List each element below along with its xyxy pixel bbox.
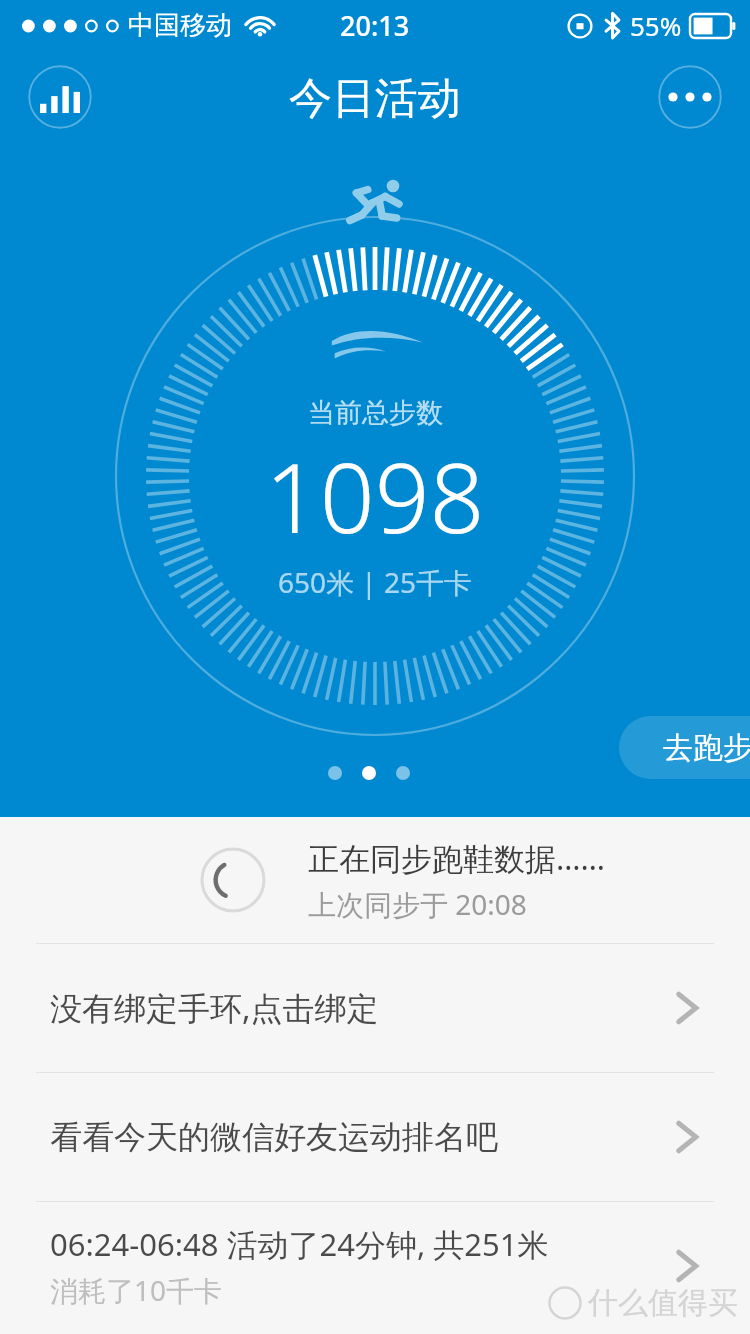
staticText: 20:13 <box>340 7 410 44</box>
staticText: 去跑步 <box>663 729 750 767</box>
staticText: 1098 <box>265 430 485 561</box>
staticText: 中国移动 <box>128 9 232 42</box>
staticText: 没有绑定手环,点击绑定 <box>50 986 379 1030</box>
staticText: 上次同步于 20:08 <box>308 885 527 923</box>
other: Open <box>674 985 700 1031</box>
other: Running activity <box>345 178 405 228</box>
button[interactable]: Statistics <box>28 65 92 129</box>
other: Open <box>674 1243 700 1289</box>
other: Open <box>674 1114 700 1160</box>
staticText: 06:24-06:48 活动了24分钟, 共251米 <box>50 1223 549 1265</box>
staticText: 当前总步数 <box>308 396 443 430</box>
button[interactable]: 看看今天的微信好友运动排名吧 <box>0 1073 750 1201</box>
button[interactable]: More options <box>658 65 722 129</box>
staticText: 什么值得买 <box>588 1284 738 1322</box>
button[interactable]: 去跑步 <box>619 716 750 779</box>
button[interactable]: 正在同步跑鞋数据…… <box>0 817 750 943</box>
staticText: 消耗了10千卡 <box>50 1271 223 1309</box>
button[interactable]: 06:24-06:48 活动了24分钟, 共251米 <box>0 1202 750 1330</box>
staticText: 正在同步跑鞋数据…… <box>308 837 606 879</box>
staticText: 55% <box>630 8 682 43</box>
staticText: 看看今天的微信好友运动排名吧 <box>50 1117 498 1157</box>
staticText: 今日活动 <box>289 72 461 126</box>
staticText: 650米 | 25千卡 <box>278 563 473 601</box>
button[interactable]: 没有绑定手环,点击绑定 <box>0 944 750 1072</box>
